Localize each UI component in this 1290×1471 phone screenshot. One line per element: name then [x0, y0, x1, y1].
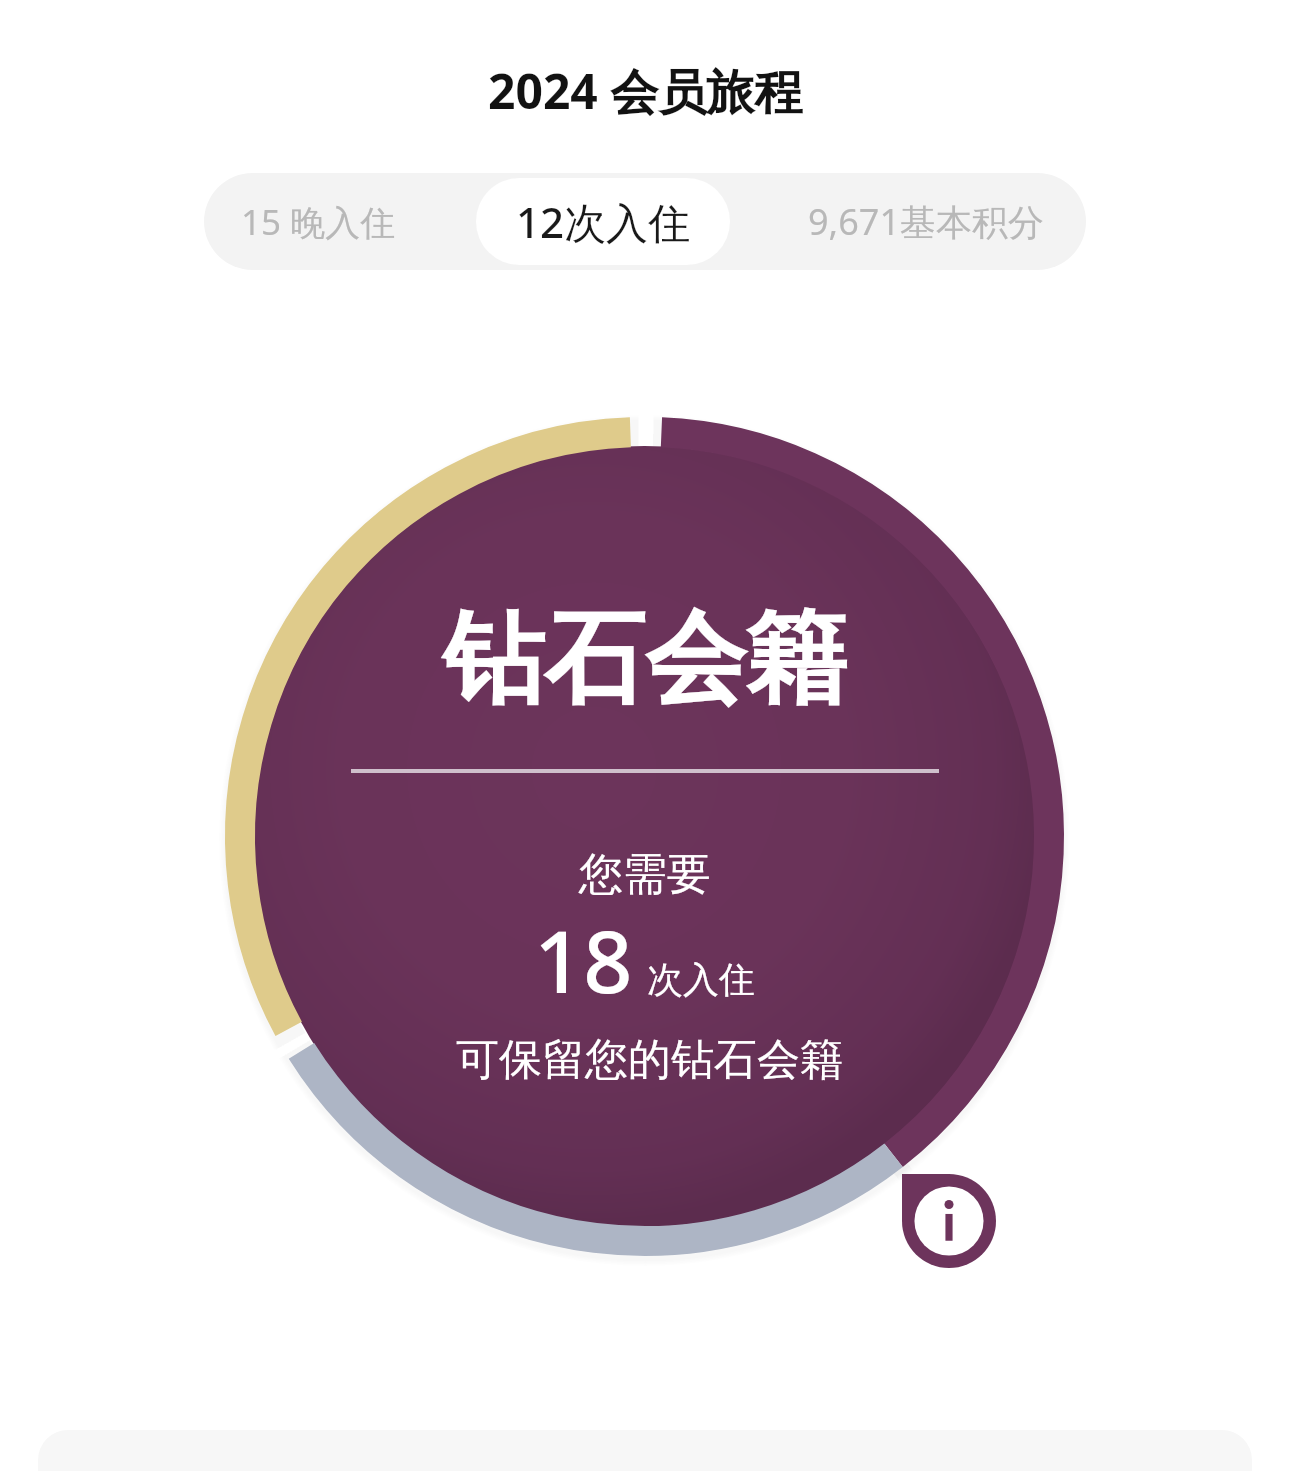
staticText: 15 晚入住	[241, 198, 396, 246]
button[interactable]: More information	[902, 1174, 996, 1268]
staticText: 2024 会员旅程	[488, 58, 803, 124]
staticText: 12次入住	[516, 193, 691, 250]
button[interactable]: 12次入住	[476, 178, 730, 265]
staticText: 9,671基本积分	[808, 197, 1045, 246]
staticText: 您需要	[579, 847, 711, 902]
button[interactable]: 9,671基本积分	[767, 173, 1086, 270]
button[interactable]: 15 晚入住	[204, 173, 433, 270]
staticText: 次入住	[647, 957, 755, 1002]
staticText: 18	[534, 901, 633, 1018]
staticText: 可保留您的钻石会籍	[456, 1033, 843, 1087]
staticText: 钻石会籍	[443, 596, 847, 723]
